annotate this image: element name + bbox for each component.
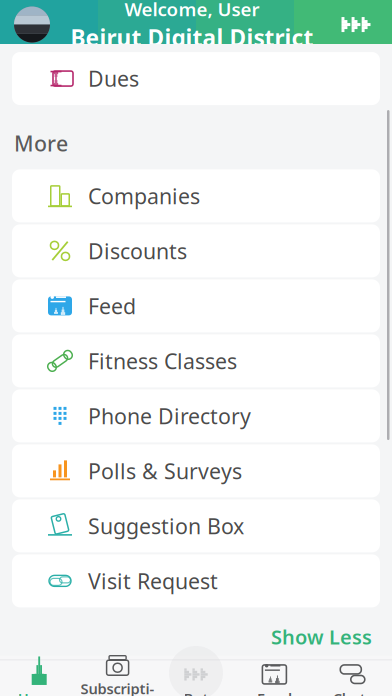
button[interactable]: Discounts — [0, 224, 392, 279]
button[interactable]: Suggestion Box — [0, 499, 392, 554]
staticText: Phone Directory — [88, 402, 251, 430]
button[interactable]: Chats — [314, 660, 392, 696]
button[interactable]: Dues — [0, 52, 392, 107]
staticText: Beirut Digital District — [70, 22, 313, 52]
staticText: Discounts — [88, 237, 187, 265]
button[interactable]: Visit Request — [0, 554, 392, 609]
button[interactable]: Companies — [0, 169, 392, 224]
staticText: Bot — [183, 688, 208, 696]
button[interactable]: Home — [0, 660, 78, 696]
staticText: Home — [18, 688, 61, 696]
button[interactable]: Show Less — [267, 617, 376, 656]
staticText: Visit Request — [88, 567, 218, 595]
staticText: Suggestion Box — [88, 512, 244, 540]
button[interactable]: Assistant — [334, 7, 378, 43]
staticText: Polls & Surveys — [88, 457, 242, 485]
staticText: Show Less — [271, 623, 372, 650]
button[interactable]: Profile — [14, 7, 50, 43]
button[interactable]: Polls & Surveys — [0, 444, 392, 499]
button[interactable]: Bot — [157, 660, 235, 696]
staticText: Fitness Classes — [88, 347, 237, 375]
staticText: Welcome, User — [124, 0, 259, 21]
staticText: Dues — [88, 64, 139, 93]
staticText: More — [14, 129, 68, 157]
button[interactable]: Feed — [235, 660, 314, 696]
staticText: Chats — [333, 688, 373, 696]
button[interactable]: Fitness Classes — [0, 334, 392, 389]
staticText: Feed — [88, 292, 136, 320]
button[interactable]: Phone Directory — [0, 389, 392, 444]
button[interactable]: Subscriptions — [78, 660, 157, 696]
staticText: Feed — [257, 688, 292, 696]
staticText: Subscriptions — [81, 679, 155, 696]
button[interactable]: Feed — [0, 279, 392, 334]
staticText: Companies — [88, 182, 200, 210]
